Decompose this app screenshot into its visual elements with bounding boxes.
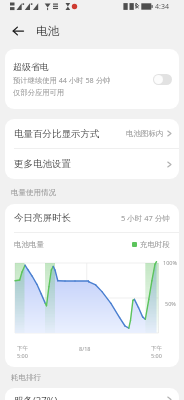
staticText: 5 小时 47 分钟 bbox=[121, 213, 170, 223]
button[interactable]: 电量百分比显示方式 bbox=[5, 119, 179, 148]
staticText: 电量使用情况 bbox=[11, 188, 56, 197]
staticText: 更多电池设置 bbox=[14, 158, 167, 170]
button[interactable]: 服务(27%) bbox=[5, 388, 179, 400]
button[interactable]: 更多电池设置 bbox=[5, 149, 179, 179]
button[interactable]: 返回 bbox=[8, 21, 28, 41]
staticText: 充电时段 bbox=[140, 240, 170, 249]
staticText: 电池图标内 bbox=[126, 129, 164, 138]
staticText: 下午 5:00 bbox=[17, 345, 28, 360]
staticText: 电池 bbox=[36, 24, 59, 38]
button[interactable]: 超级省电开关 bbox=[153, 74, 172, 85]
staticText: 下午 5:00 bbox=[151, 345, 162, 360]
staticText: 耗电排行 bbox=[11, 373, 41, 382]
button[interactable]: 今日亮屏时长 bbox=[5, 204, 179, 232]
staticText: 预计继续使用 44 小时 58 分钟 bbox=[13, 75, 111, 85]
staticText: 100% bbox=[163, 259, 178, 266]
staticText: 仅部分应用可用 bbox=[13, 88, 65, 97]
staticText: 8/18 bbox=[79, 345, 91, 352]
staticText: 超级省电 bbox=[13, 61, 49, 72]
staticText: 50% bbox=[165, 300, 176, 307]
staticText: 4:34 bbox=[155, 2, 169, 12]
staticText: 电量百分比显示方式 bbox=[14, 128, 126, 140]
staticText: 服务(27%) bbox=[14, 394, 167, 400]
staticText: 电池电量 bbox=[14, 240, 132, 249]
staticText: 今日亮屏时长 bbox=[14, 212, 121, 224]
